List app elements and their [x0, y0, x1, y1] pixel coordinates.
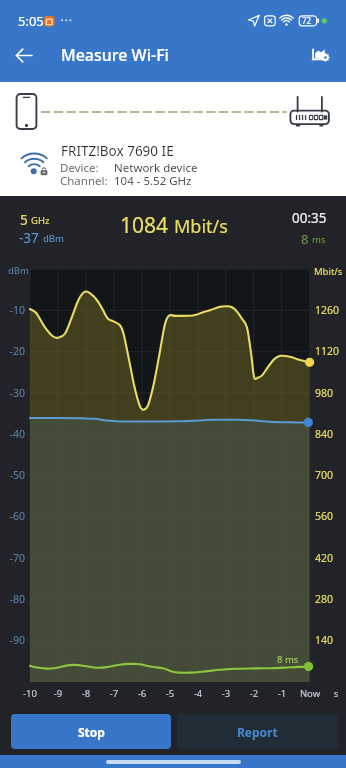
staticText: -30 [0, 386, 25, 400]
staticText: ms [312, 233, 326, 246]
button[interactable]: Back [4, 35, 44, 75]
staticText: 1084 [120, 211, 169, 240]
staticText: -6 [112, 687, 172, 700]
button[interactable]: Report [177, 714, 338, 749]
staticText: dBm [8, 264, 29, 277]
staticText: -10 [0, 303, 25, 317]
staticText: -37 [19, 229, 39, 247]
staticText: -3 [196, 687, 256, 700]
staticText: Mbit/s [314, 265, 343, 278]
button[interactable]: Chart settings [300, 35, 340, 75]
staticText: 700 [315, 468, 334, 482]
staticText: 8 [301, 230, 309, 248]
staticText: 1260 [315, 303, 340, 317]
staticText: 5:05 [18, 12, 44, 30]
staticText: -50 [0, 468, 25, 482]
staticText: -80 [0, 592, 25, 606]
staticText: 840 [315, 427, 334, 441]
staticText: Network device [114, 160, 198, 176]
staticText: -70 [0, 551, 25, 565]
staticText: 980 [315, 386, 334, 400]
button[interactable]: Stop [11, 714, 171, 749]
staticText: 104 - 5.52 GHz [114, 173, 192, 189]
staticText: GHz [31, 214, 50, 227]
staticText: Now [280, 687, 340, 700]
staticText: Stop [78, 724, 105, 740]
staticText: -4 [168, 687, 228, 700]
staticText: 280 [315, 592, 334, 606]
staticText: -7 [84, 687, 144, 700]
staticText: -90 [0, 633, 25, 647]
staticText: -8 [56, 687, 116, 700]
staticText: FRITZ!Box 7690 IE [61, 142, 174, 160]
staticText: Channel: [60, 173, 108, 189]
staticText: Mbit/s [174, 214, 228, 239]
staticText: 1120 [315, 344, 340, 358]
staticText: 560 [315, 509, 334, 523]
staticText: -20 [0, 344, 25, 358]
staticText: -9 [28, 687, 88, 700]
staticText: -2 [224, 687, 284, 700]
staticText: s [306, 687, 346, 700]
staticText: -10 [0, 687, 60, 700]
staticText: 72 [302, 15, 312, 26]
staticText: Device: [60, 160, 99, 176]
staticText: 8 ms [277, 653, 299, 666]
staticText: -40 [0, 427, 25, 441]
staticText: dBm [43, 232, 64, 245]
staticText: Report [237, 724, 278, 740]
staticText: -5 [140, 687, 200, 700]
staticText: -1 [252, 687, 312, 700]
staticText: 5 [20, 211, 28, 229]
staticText: Measure Wi-Fi [61, 44, 169, 66]
staticText: 00:35 [292, 209, 327, 227]
staticText: 140 [315, 633, 334, 647]
staticText: -60 [0, 509, 25, 523]
staticText: 420 [315, 551, 334, 565]
